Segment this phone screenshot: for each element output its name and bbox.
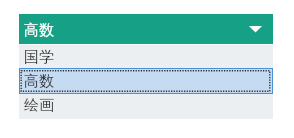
staticText: 国学 [24,48,54,67]
button[interactable]: 国学 [19,45,273,69]
staticText: 绘画 [24,96,54,115]
button[interactable]: 高数 [19,14,273,44]
button[interactable]: 绘画 [19,93,273,117]
staticText: 高数 [24,72,54,91]
staticText: 高数 [24,21,54,40]
other: Open dropdown [240,14,273,44]
button[interactable]: 高数 [19,69,273,93]
